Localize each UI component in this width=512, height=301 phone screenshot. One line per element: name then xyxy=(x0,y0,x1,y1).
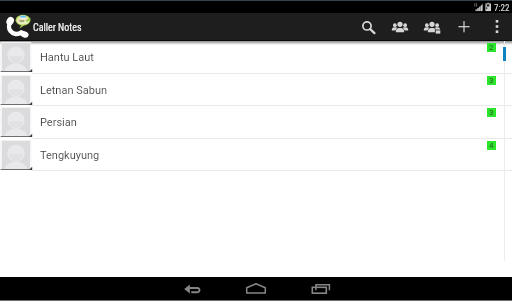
staticText: Caller Notes xyxy=(33,22,82,34)
staticText: 3 xyxy=(489,76,494,85)
staticText: 2 xyxy=(489,43,494,52)
button[interactable]: Hantu Laut xyxy=(0,41,512,74)
button[interactable]: More options xyxy=(480,13,512,41)
staticText: 4 xyxy=(489,141,494,150)
staticText: Hantu Laut xyxy=(40,51,94,64)
staticText: 3 xyxy=(489,108,494,117)
button[interactable]: Add note xyxy=(448,13,480,41)
staticText: Persian xyxy=(40,116,77,129)
staticText: 7:22 xyxy=(494,3,510,14)
button[interactable]: Recent apps xyxy=(304,277,336,300)
button[interactable]: Groups xyxy=(384,13,416,41)
staticText: Letnan Sabun xyxy=(40,84,108,97)
button[interactable]: Persian xyxy=(0,106,512,139)
button[interactable]: Create group xyxy=(416,13,448,41)
button[interactable]: Home xyxy=(240,277,272,300)
staticText: Tengkuyung xyxy=(40,149,100,162)
button[interactable]: Search xyxy=(352,13,384,41)
button[interactable]: Letnan Sabun xyxy=(0,74,512,106)
button[interactable]: Back xyxy=(176,277,208,300)
button[interactable]: Tengkuyung xyxy=(0,139,512,171)
